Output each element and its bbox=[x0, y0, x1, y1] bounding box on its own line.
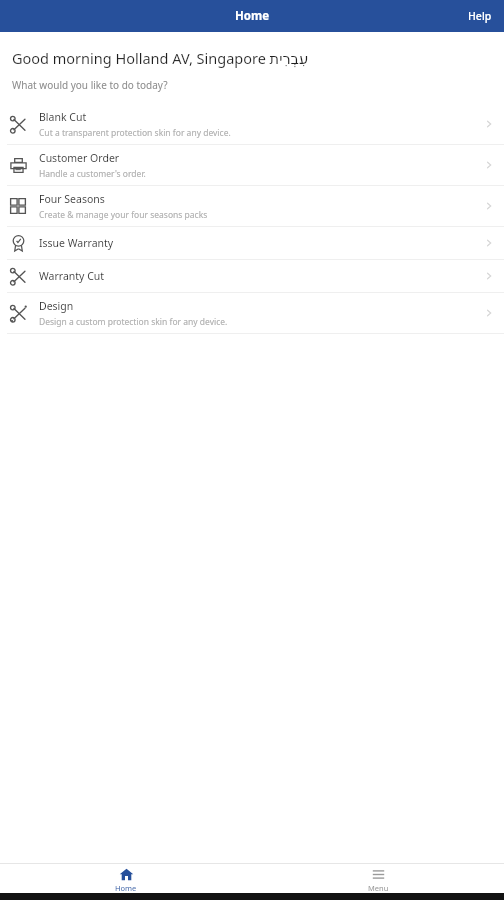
button[interactable]: Warranty Cut bbox=[0, 260, 504, 292]
button[interactable]: Four Seasons bbox=[0, 186, 504, 226]
button[interactable]: Help bbox=[456, 1, 504, 31]
button[interactable]: Design bbox=[0, 293, 504, 333]
staticText: Home bbox=[115, 883, 137, 891]
button[interactable]: Customer Order bbox=[0, 145, 504, 185]
staticText: Design a custom protection skin for any … bbox=[39, 316, 228, 328]
staticText: Customer Order bbox=[39, 151, 120, 165]
staticText: Home bbox=[235, 8, 270, 24]
staticText: Warranty Cut bbox=[39, 269, 105, 283]
staticText: What would you like to do today? bbox=[12, 78, 168, 92]
staticText: Four Seasons bbox=[39, 192, 105, 206]
button[interactable]: Menu bbox=[328, 864, 428, 893]
other: Home bbox=[118, 866, 134, 882]
staticText: Blank Cut bbox=[39, 110, 87, 124]
button[interactable]: Issue Warranty bbox=[0, 227, 504, 259]
staticText: Create & manage your four seasons packs bbox=[39, 209, 208, 221]
staticText: Cut a transparent protection skin for an… bbox=[39, 127, 231, 139]
staticText: Handle a customer's order. bbox=[39, 168, 146, 180]
button[interactable]: Blank Cut bbox=[0, 104, 504, 144]
button[interactable]: Home bbox=[76, 864, 176, 893]
staticText: Good morning Holland AV, Singapore עִבְר… bbox=[12, 48, 309, 68]
staticText: Design bbox=[39, 299, 74, 313]
other: Menu bbox=[370, 866, 386, 882]
staticText: Help bbox=[468, 9, 492, 23]
staticText: Issue Warranty bbox=[39, 236, 114, 250]
staticText: Menu bbox=[368, 883, 389, 891]
